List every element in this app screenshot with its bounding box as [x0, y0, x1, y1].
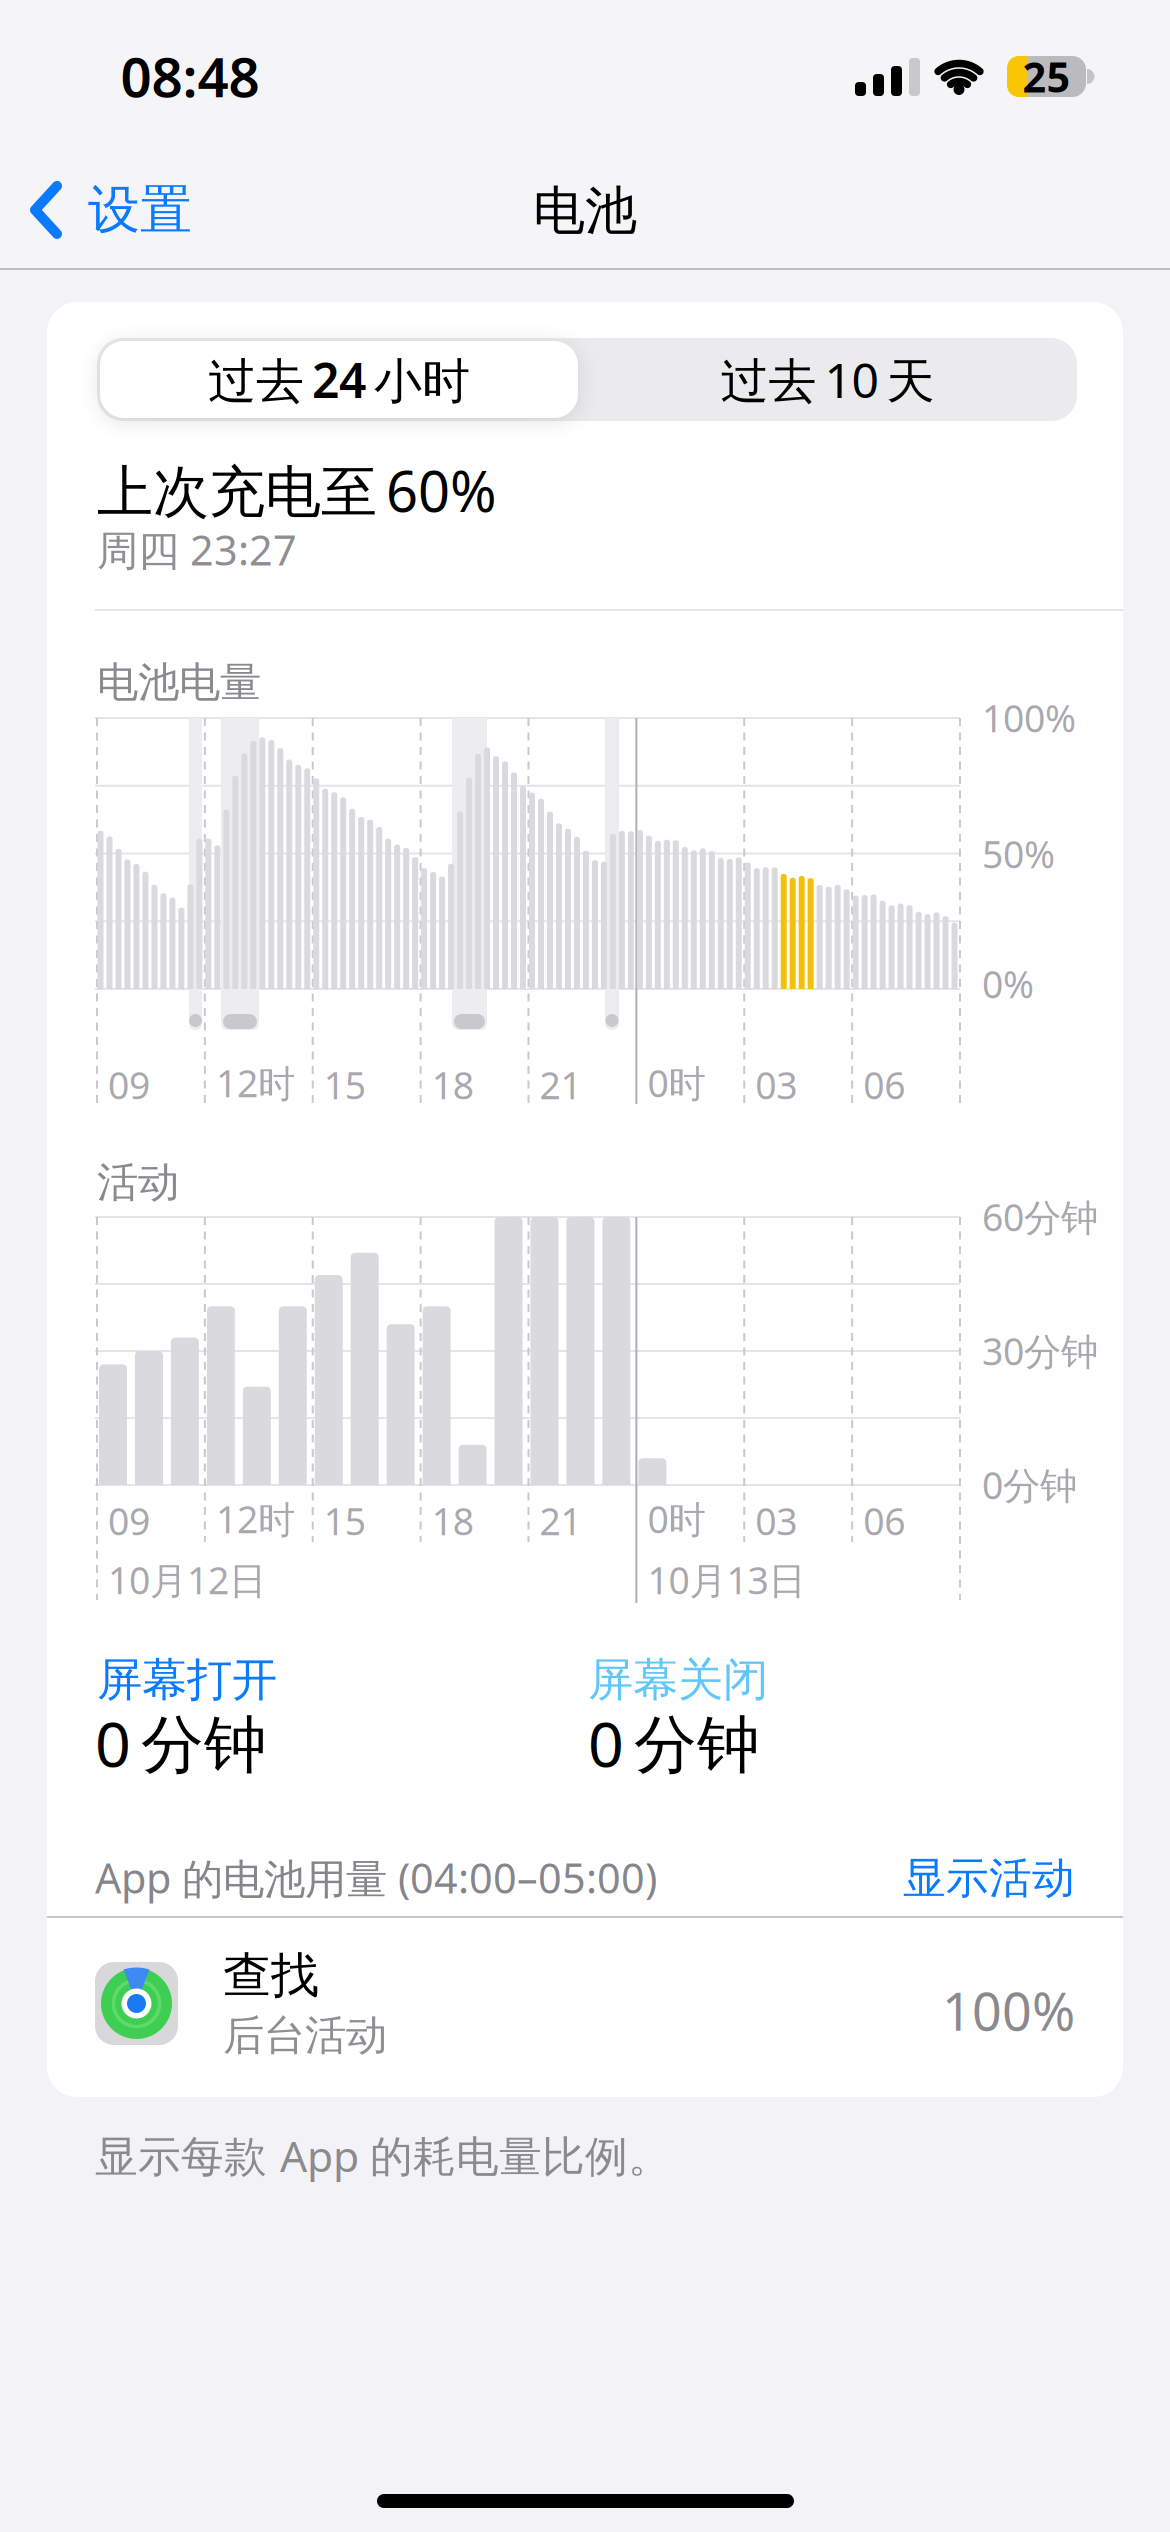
staticText: 30分钟: [982, 1326, 1098, 1376]
staticText: 活动: [97, 1157, 179, 1208]
staticText: 03: [755, 1496, 797, 1546]
staticText: 电池电量: [97, 657, 261, 708]
staticText: 06: [863, 1496, 905, 1546]
staticText: 08:48: [120, 40, 259, 112]
staticText: 100%: [942, 1976, 1075, 2045]
staticText: 0时: [647, 1058, 705, 1108]
button[interactable]: 过去 24 小时: [100, 341, 578, 418]
staticText: 06: [863, 1060, 905, 1110]
staticText: 0 分钟: [95, 1701, 267, 1784]
staticText: 屏幕关闭: [588, 1652, 768, 1708]
staticText: 12时: [216, 1058, 295, 1108]
staticText: 过去 10 天: [720, 348, 934, 411]
staticText: 显示活动: [903, 1852, 1075, 1904]
staticText: 03: [755, 1060, 797, 1110]
button[interactable]: 查找: [47, 1918, 1123, 2097]
staticText: 设置: [88, 178, 192, 242]
staticText: 屏幕打开: [97, 1652, 277, 1708]
staticText: 09: [108, 1060, 150, 1110]
button[interactable]: 设置: [33, 178, 192, 242]
staticText: 09: [108, 1496, 150, 1546]
staticText: 18: [432, 1060, 474, 1110]
staticText: 21: [539, 1496, 581, 1546]
staticText: 查找: [223, 1946, 319, 2005]
staticText: 18: [432, 1496, 474, 1546]
staticText: 0%: [982, 959, 1034, 1009]
staticText: 12时: [216, 1494, 295, 1544]
staticText: 显示每款 App 的耗电量比例。: [95, 2127, 671, 2184]
staticText: 10月13日: [647, 1555, 805, 1605]
staticText: 0分钟: [982, 1460, 1077, 1510]
staticText: 过去 24 小时: [208, 348, 470, 411]
staticText: 15: [324, 1496, 366, 1546]
button[interactable]: 过去 10 天: [578, 338, 1077, 421]
staticText: 10月12日: [108, 1555, 266, 1605]
button[interactable]: 显示活动: [95, 1852, 1075, 1904]
staticText: 50%: [982, 829, 1055, 879]
staticText: App 的电池用量 (04:00–05:00): [95, 1850, 657, 1905]
staticText: 60分钟: [982, 1192, 1098, 1242]
staticText: 25: [1022, 49, 1070, 104]
staticText: 15: [324, 1060, 366, 1110]
staticText: 周四 23:27: [97, 522, 297, 577]
staticText: 0时: [647, 1494, 705, 1544]
staticText: 电池: [533, 179, 637, 243]
staticText: 100%: [982, 693, 1076, 743]
staticText: 21: [539, 1060, 581, 1110]
staticText: 上次充电至 60%: [97, 453, 497, 527]
staticText: 0 分钟: [588, 1701, 760, 1784]
staticText: 后台活动: [223, 2010, 387, 2061]
